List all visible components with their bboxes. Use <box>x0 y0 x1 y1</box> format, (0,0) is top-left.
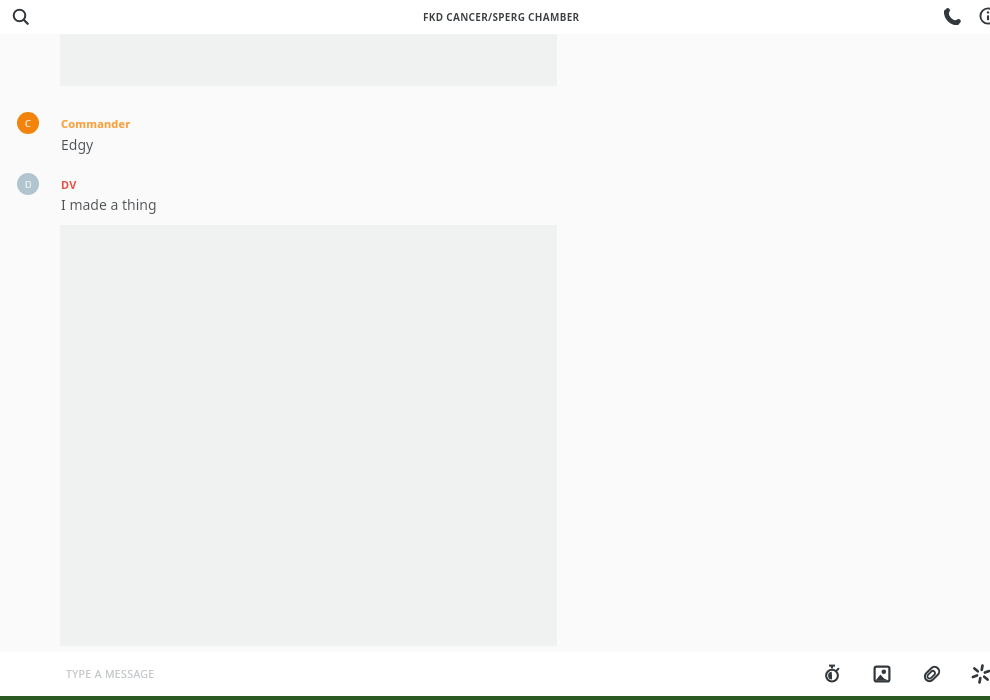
staticText: C <box>25 117 31 129</box>
staticText: Commander <box>61 116 131 131</box>
staticText: I made a thing <box>61 195 157 214</box>
staticText: TYPE A MESSAGE <box>66 667 155 681</box>
button[interactable]: TYPE A MESSAGE <box>56 652 656 696</box>
button[interactable] <box>812 652 852 696</box>
button[interactable] <box>934 0 970 34</box>
staticText: DV <box>61 177 77 192</box>
button[interactable] <box>862 652 902 696</box>
button[interactable] <box>971 0 990 34</box>
button[interactable]: D <box>17 173 39 195</box>
button[interactable] <box>2 0 39 34</box>
button[interactable] <box>912 652 952 696</box>
button[interactable]: C <box>17 112 39 134</box>
staticText: D <box>25 178 32 190</box>
staticText: FKD CANCER/SPERG CHAMBER <box>423 10 580 24</box>
staticText: Edgy <box>61 135 94 154</box>
button[interactable] <box>961 652 990 696</box>
